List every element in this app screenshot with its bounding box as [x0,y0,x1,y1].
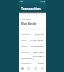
staticText: Amount [21,32,31,35]
button[interactable]: Home [19,65,25,72]
button[interactable]: Merchant [19,16,46,28]
staticText: Food [38,61,44,64]
button[interactable]: Stats [32,65,39,72]
staticText: $124.50 [35,32,44,35]
staticText: Blue Bottle [21,22,37,26]
button[interactable]: Method [19,48,46,54]
staticText: TXN-88213 [33,54,44,60]
staticText: Category [21,61,32,64]
staticText: Date [21,38,27,41]
button[interactable]: Profile [39,65,46,72]
button[interactable]: Amount [19,30,46,36]
staticText: Method [21,50,30,53]
button[interactable]: Category [19,60,46,65]
staticText: 12 Jun 2024 [30,38,44,41]
staticText: Merchant [21,18,31,21]
staticText: Status [21,44,29,47]
staticText: Reference [21,56,33,59]
button[interactable]: Status [19,42,46,48]
staticText: Completed [31,44,44,47]
button[interactable]: Reference [19,54,46,60]
staticText: Visa 4242 [33,50,44,53]
button[interactable]: Date [19,36,46,42]
staticText: Transaction Details [21,6,46,12]
button[interactable]: Cards [25,65,32,72]
